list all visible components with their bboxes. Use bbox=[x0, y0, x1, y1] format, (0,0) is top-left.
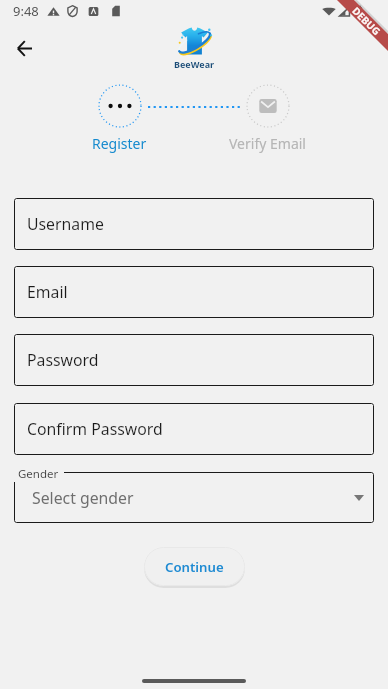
staticText: Gender bbox=[18, 466, 59, 482]
staticText: 9:48 bbox=[13, 2, 39, 20]
button[interactable]: Confirm Password bbox=[14, 403, 374, 455]
button[interactable]: Select gender bbox=[14, 472, 374, 523]
button[interactable]: Verify Email bbox=[246, 84, 290, 128]
button[interactable]: Register bbox=[98, 84, 142, 128]
staticText: Email bbox=[27, 281, 68, 303]
staticText: Verify Email bbox=[229, 134, 306, 153]
staticText: Select gender bbox=[32, 487, 134, 509]
staticText: Register bbox=[92, 134, 147, 153]
staticText: Confirm Password bbox=[27, 418, 163, 440]
staticText: DEBUG bbox=[351, 4, 384, 37]
staticText: Username bbox=[27, 213, 104, 235]
staticText: Password bbox=[27, 349, 99, 371]
staticText: BeeWear bbox=[174, 58, 215, 70]
button[interactable]: Back bbox=[8, 32, 40, 64]
button[interactable]: Email bbox=[14, 266, 374, 318]
button[interactable]: Continue bbox=[144, 547, 245, 586]
button[interactable]: Username bbox=[14, 198, 374, 250]
button[interactable]: Password bbox=[14, 334, 374, 386]
staticText: Continue bbox=[165, 558, 224, 576]
